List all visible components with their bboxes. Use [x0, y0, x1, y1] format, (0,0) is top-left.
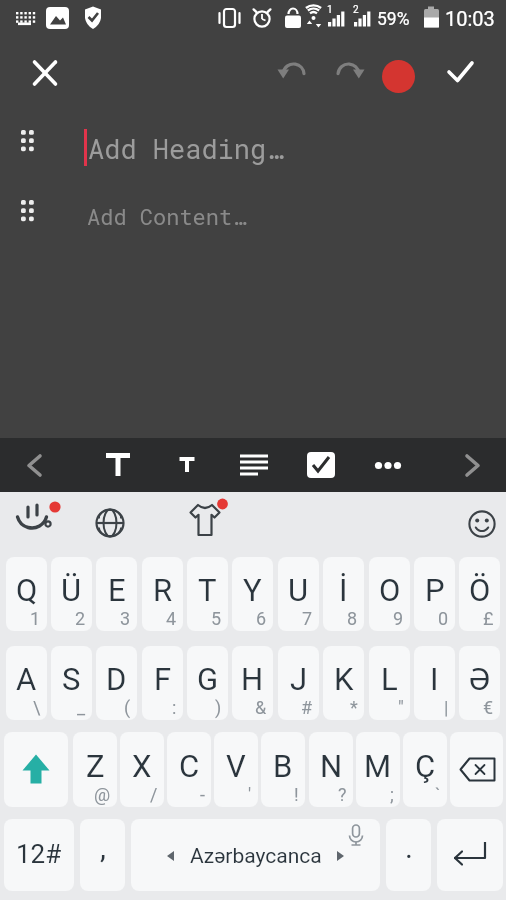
staticText: H [241, 661, 264, 697]
staticText: Add Content… [87, 202, 246, 231]
button[interactable] [98, 445, 138, 485]
button[interactable] [441, 52, 481, 96]
button[interactable] [88, 500, 132, 542]
button[interactable]: N [309, 732, 353, 807]
staticText: 59% [377, 9, 410, 30]
staticText: 6 [256, 608, 267, 629]
button[interactable] [368, 445, 408, 485]
staticText: " [398, 697, 404, 718]
button[interactable] [167, 445, 207, 485]
button[interactable] [382, 60, 415, 93]
staticText: / [150, 784, 158, 805]
button[interactable] [301, 445, 341, 485]
staticText: 1 [327, 4, 333, 16]
staticText: A [16, 661, 37, 697]
button[interactable]: F [142, 646, 183, 720]
button[interactable]: Azərbaycanca [131, 819, 380, 891]
staticText: J [290, 661, 308, 697]
button[interactable] [329, 52, 369, 96]
button[interactable]: C [167, 732, 211, 807]
staticText: 9 [393, 608, 404, 629]
button[interactable] [437, 819, 503, 891]
button[interactable]: B [261, 732, 305, 807]
button[interactable]: Z [73, 732, 117, 807]
button[interactable]: K [323, 646, 364, 720]
staticText: F [154, 661, 172, 697]
button[interactable] [452, 445, 492, 485]
staticText: E [108, 572, 126, 608]
staticText: D [106, 661, 127, 697]
button[interactable]: E [96, 557, 137, 631]
staticText: ) [215, 697, 222, 718]
staticText: 2 [75, 608, 86, 629]
staticText: M [364, 748, 392, 784]
button[interactable]: Ü [51, 557, 92, 631]
button[interactable]: S [51, 646, 92, 720]
staticText: U [288, 572, 309, 608]
button[interactable] [10, 496, 62, 542]
staticText: T [198, 572, 217, 608]
staticText: - [200, 784, 205, 805]
button[interactable] [15, 445, 55, 485]
button[interactable]: Ə [459, 646, 500, 720]
button[interactable] [450, 732, 503, 807]
staticText: C [179, 748, 200, 784]
staticText: 1 [30, 608, 41, 629]
button[interactable]: , [80, 819, 125, 891]
staticText: . [405, 830, 413, 865]
button[interactable]: T [187, 557, 228, 631]
button[interactable] [25, 53, 65, 95]
button[interactable]: G [187, 646, 228, 720]
button[interactable]: J [278, 646, 319, 720]
staticText: L [381, 661, 398, 697]
staticText: Q [16, 572, 38, 608]
staticText: 5 [211, 608, 222, 629]
button[interactable] [460, 502, 504, 544]
button[interactable]: . [386, 819, 431, 891]
button[interactable]: R [142, 557, 183, 631]
button[interactable]: U [278, 557, 319, 631]
staticText: , [100, 830, 106, 865]
button[interactable]: Y [232, 557, 273, 631]
button[interactable]: L [369, 646, 410, 720]
staticText: Azərbaycanca [190, 844, 322, 869]
button[interactable]: X [120, 732, 164, 807]
button[interactable] [4, 732, 68, 807]
staticText: 2 [353, 4, 359, 16]
staticText: | [444, 697, 449, 718]
button[interactable] [273, 52, 313, 96]
staticText: ? [338, 784, 347, 805]
staticText: İ [339, 572, 348, 608]
button[interactable] [187, 502, 231, 542]
staticText: ( [124, 697, 131, 718]
button[interactable] [234, 445, 274, 485]
button[interactable]: O [369, 557, 410, 631]
button[interactable]: İ [323, 557, 364, 631]
button[interactable]: H [232, 646, 273, 720]
button[interactable]: D [96, 646, 137, 720]
button[interactable]: M [356, 732, 400, 807]
button[interactable]: P [414, 557, 455, 631]
button[interactable]: Q [6, 557, 47, 631]
staticText: : [172, 697, 177, 718]
staticText: £ [483, 608, 494, 629]
staticText: O [379, 572, 401, 608]
staticText: Ç [415, 748, 436, 784]
staticText: I [430, 661, 439, 697]
staticText: X [132, 748, 152, 784]
staticText: ` [435, 784, 441, 805]
button[interactable]: Ö [459, 557, 500, 631]
staticText: S [62, 661, 81, 697]
staticText: Add Heading… [88, 131, 283, 167]
button[interactable]: V [214, 732, 258, 807]
staticText: Ə [469, 661, 491, 697]
staticText: B [273, 748, 293, 784]
staticText: K [334, 661, 354, 697]
staticText: 0 [438, 608, 449, 629]
staticText: V [226, 748, 246, 784]
button[interactable]: 12# [4, 819, 74, 891]
button[interactable]: A [6, 646, 47, 720]
button[interactable]: Ç [403, 732, 447, 807]
staticText: 3 [120, 608, 131, 629]
button[interactable]: I [414, 646, 455, 720]
